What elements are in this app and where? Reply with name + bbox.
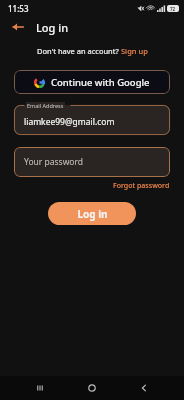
button[interactable]: Home	[84, 380, 100, 396]
button[interactable]: Log in	[48, 202, 136, 225]
button[interactable]: Continue with Google	[14, 70, 170, 94]
button[interactable]: Back	[8, 17, 28, 37]
button[interactable]: Your password	[14, 147, 170, 177]
staticText: liamkee99@gmail.com	[24, 116, 115, 128]
staticText: Sign up	[121, 46, 148, 56]
button[interactable]: Sign up	[121, 46, 148, 56]
button[interactable]: Back	[136, 380, 152, 396]
staticText: Log in	[36, 20, 69, 35]
staticText: Your password	[24, 156, 84, 168]
button[interactable]: Recent apps	[32, 380, 48, 396]
staticText: Email Address	[27, 102, 64, 109]
staticText: 11:53	[8, 3, 29, 14]
staticText: Log in	[77, 207, 108, 221]
staticText: Continue with Google	[51, 76, 150, 89]
staticText: Forgot password	[113, 181, 170, 191]
button[interactable]: Forgot password	[113, 181, 170, 191]
staticText: 72	[170, 6, 176, 12]
button[interactable]	[14, 105, 170, 135]
staticText: Don't have an account?	[37, 46, 121, 56]
